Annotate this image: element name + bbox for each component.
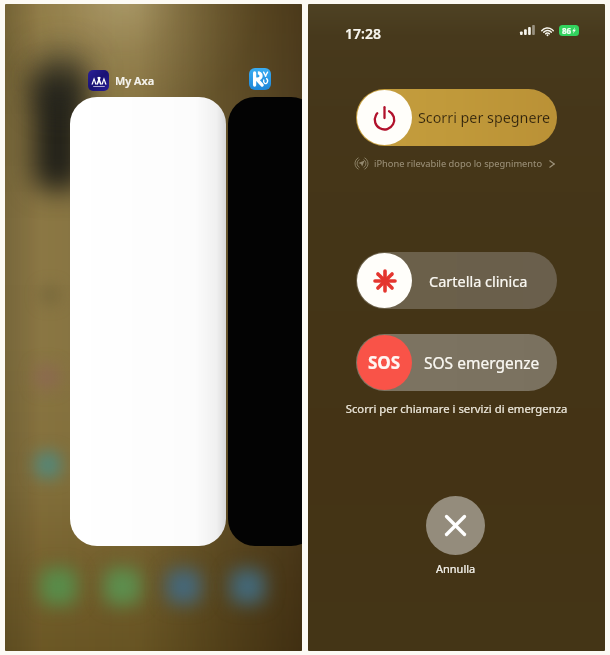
button[interactable]: Cartella clinica [356,252,557,309]
staticText: Scorri per spegnere [418,108,551,127]
button[interactable]: Scorri per spegnere [356,89,557,146]
staticText: Scorri per chiamare i servizi di emergen… [308,401,605,416]
button[interactable]: App card [228,97,302,546]
button[interactable]: Annulla [426,496,485,555]
staticText: My Axa [115,73,155,88]
staticText: Annulla [436,561,476,576]
staticText: SOS emergenze [424,352,540,373]
staticText: iPhone rilevabile dopo lo spegnimento [374,157,543,170]
staticText: Cartella clinica [429,271,528,291]
button[interactable]: My Axa [88,70,155,91]
staticText: 86 [562,25,572,36]
staticText: 17:28 [345,24,381,43]
button[interactable]: SOS [356,334,557,391]
staticText: SOS [368,351,401,374]
button[interactable]: My Axa app card [70,97,226,546]
button[interactable]: Rx app icon [249,68,271,90]
button[interactable]: iPhone rilevabile dopo lo spegnimento [354,156,556,171]
